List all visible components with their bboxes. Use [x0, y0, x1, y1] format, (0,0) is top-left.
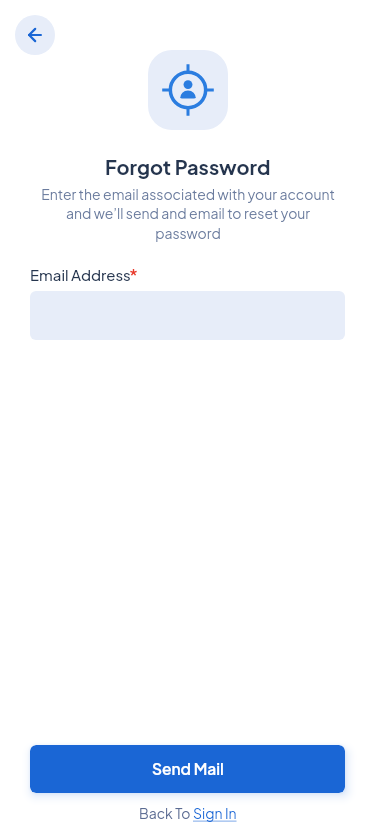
staticText: Back To	[139, 804, 193, 822]
staticText: Sign In	[193, 804, 237, 822]
button[interactable]: Back	[15, 15, 55, 55]
staticText: *	[129, 264, 138, 287]
button[interactable]: Back To	[139, 804, 237, 822]
staticText: Forgot Password	[105, 154, 271, 179]
staticText: Enter the email associated with your acc…	[38, 185, 338, 243]
staticText: Email Address	[30, 265, 131, 284]
button[interactable]: Send Mail	[30, 745, 345, 793]
staticText: Send Mail	[152, 759, 224, 779]
